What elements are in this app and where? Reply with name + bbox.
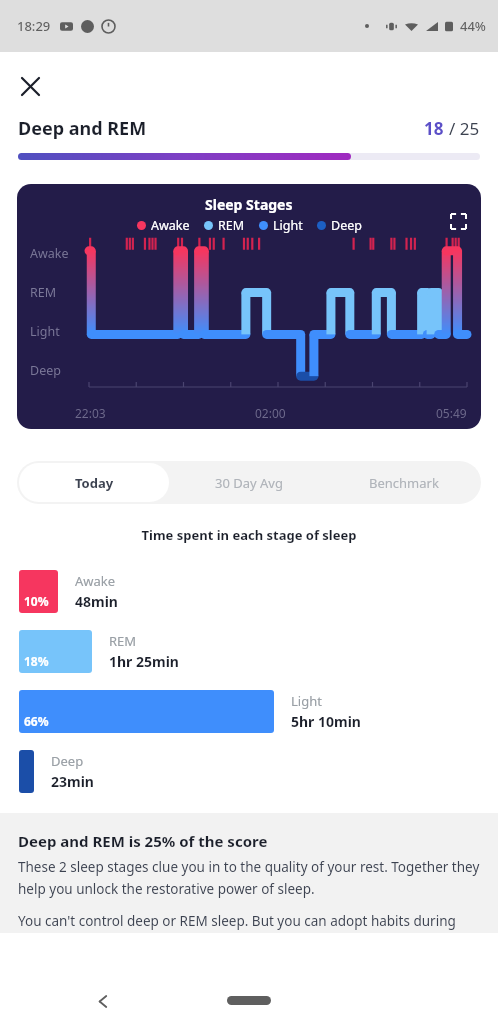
- button[interactable]: Deep: [19, 750, 498, 793]
- staticText: 18:29: [17, 17, 51, 35]
- button[interactable]: Expand chart: [445, 208, 471, 234]
- staticText: Time spent in each stage of sleep: [0, 526, 498, 544]
- button[interactable]: Close: [10, 66, 50, 106]
- staticText: 1hr 25min: [109, 652, 179, 671]
- staticText: 5hr 10min: [291, 712, 361, 731]
- staticText: 30 Day Avg: [215, 474, 283, 492]
- button[interactable]: 30 Day Avg: [171, 461, 326, 504]
- staticText: These 2 sleep stages clue you in to the …: [18, 858, 480, 898]
- staticText: 23min: [51, 772, 94, 791]
- staticText: Light: [30, 323, 60, 340]
- staticText: Deep: [51, 752, 84, 770]
- staticText: 10%: [24, 593, 49, 609]
- staticText: Deep: [30, 362, 61, 379]
- staticText: Light: [273, 217, 303, 234]
- staticText: Awake: [75, 572, 116, 590]
- staticText: 22:03: [75, 405, 106, 421]
- staticText: REM: [30, 284, 57, 301]
- button[interactable]: Benchmark: [326, 461, 481, 504]
- staticText: / 25: [449, 117, 480, 140]
- button[interactable]: 66%: [19, 690, 498, 733]
- staticText: 05:49: [436, 405, 467, 421]
- staticText: 02:00: [255, 405, 286, 421]
- staticText: Deep and REM is 25% of the score: [18, 831, 268, 851]
- staticText: Today: [75, 474, 114, 492]
- staticText: Deep and REM: [18, 116, 147, 141]
- button[interactable]: 18%: [19, 630, 498, 673]
- button[interactable]: Today: [19, 463, 169, 502]
- button[interactable]: 10%: [19, 570, 498, 613]
- staticText: 18: [424, 117, 444, 140]
- button[interactable]: Back: [88, 986, 118, 1016]
- staticText: 48min: [75, 592, 118, 611]
- staticText: REM: [109, 632, 137, 650]
- staticText: REM: [218, 217, 245, 234]
- staticText: Awake: [30, 245, 69, 262]
- staticText: Deep: [331, 217, 362, 234]
- staticText: Awake: [151, 217, 190, 234]
- staticText: Light: [291, 692, 322, 710]
- staticText: 66%: [24, 713, 49, 729]
- staticText: 18%: [24, 653, 49, 669]
- staticText: Benchmark: [369, 474, 439, 492]
- button[interactable]: Home: [227, 996, 271, 1005]
- staticText: Sleep Stages: [205, 195, 293, 214]
- staticText: 44%: [460, 17, 486, 35]
- staticText: You can't control deep or REM sleep. But…: [18, 912, 480, 930]
